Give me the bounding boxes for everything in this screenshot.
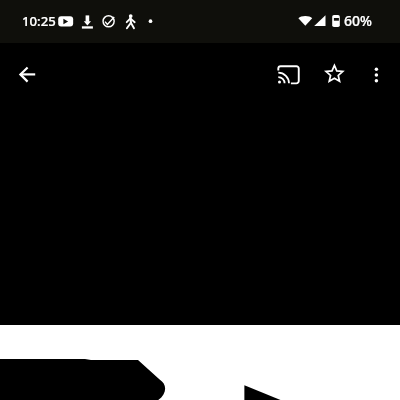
button[interactable]: Save to favourites — [312, 50, 356, 94]
button[interactable]: More options — [355, 50, 399, 94]
button[interactable]: Video details — [0, 325, 400, 400]
staticText: 10:25 — [22, 12, 56, 30]
button[interactable]: Cast to device — [266, 50, 310, 94]
button[interactable]: Back — [8, 50, 52, 94]
staticText: 60% — [344, 11, 372, 30]
button[interactable]: Video player — [0, 0, 400, 325]
